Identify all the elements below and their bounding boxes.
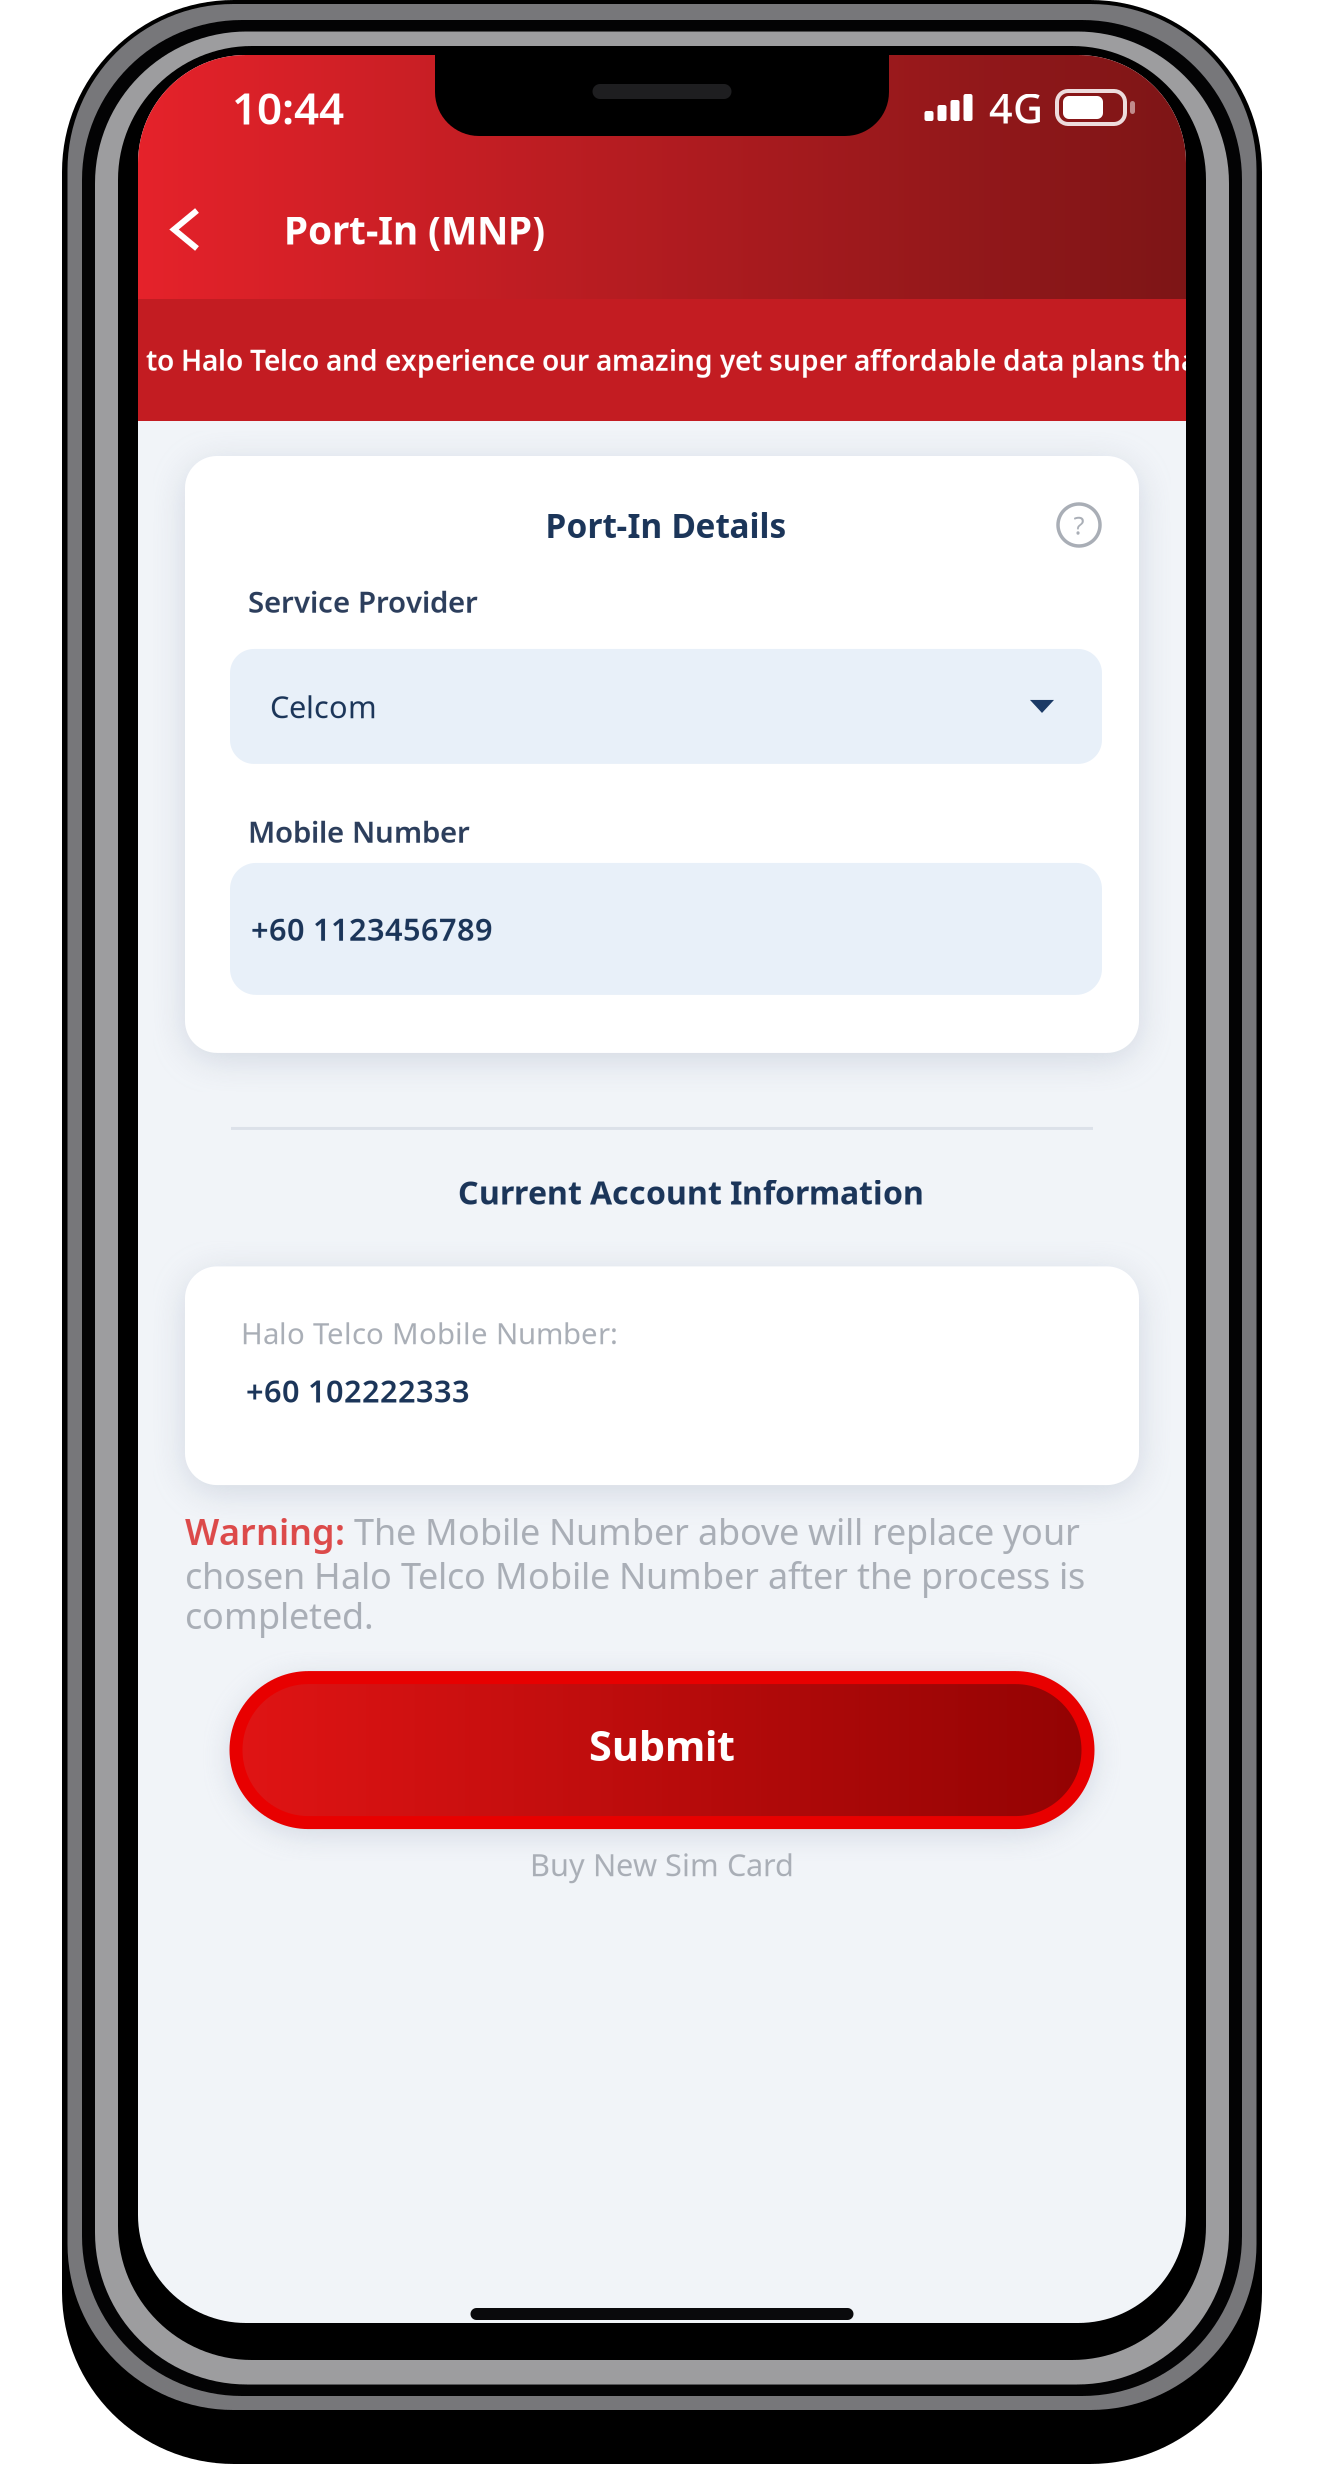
- staticText: to Halo Telco and experience our amazing…: [146, 341, 1197, 379]
- button[interactable]: Help: [1056, 502, 1102, 548]
- button[interactable]: Submit: [229, 1671, 1094, 1829]
- staticText: Buy New Sim Card: [530, 1844, 794, 1885]
- staticText: 10:44: [232, 78, 344, 137]
- staticText: Port-In (MNP): [284, 204, 545, 255]
- staticText: Mobile Number: [248, 812, 470, 851]
- staticText: Port-In Details: [545, 503, 786, 547]
- button[interactable]: Buy New Sim Card: [518, 1832, 806, 1897]
- staticText: Halo Telco Mobile Number:: [241, 1313, 618, 1352]
- staticText: completed.: [185, 1591, 374, 1639]
- staticText: Celcom: [270, 686, 377, 727]
- staticText: The Mobile Number above will replace you…: [345, 1507, 1080, 1555]
- staticText: Warning:: [185, 1507, 345, 1555]
- staticText: Current Account Information: [458, 1171, 924, 1213]
- button[interactable]: Back: [164, 179, 258, 279]
- staticText: +60 102222333: [246, 1370, 470, 1411]
- staticText: Service Provider: [248, 582, 478, 621]
- staticText: Submit: [589, 1718, 735, 1772]
- staticText: ?: [1073, 508, 1084, 542]
- staticText: +60 1123456789: [251, 908, 493, 949]
- staticText: 4G: [989, 80, 1043, 135]
- staticText: chosen Halo Telco Mobile Number after th…: [185, 1551, 1085, 1599]
